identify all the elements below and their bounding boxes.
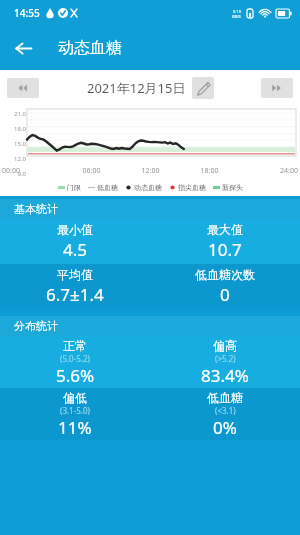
staticText: (>5.2) [215, 353, 236, 364]
staticText: 门限 [67, 183, 81, 192]
staticText: 06:00 [62, 166, 121, 176]
button[interactable]: Previous day [7, 78, 39, 98]
button[interactable]: 偏低 [0, 388, 150, 440]
staticText: 4.5 [63, 238, 88, 261]
staticText: 低血糖 [207, 390, 243, 405]
staticText: 9.0 [1, 170, 26, 178]
staticText: 低血糖次数 [195, 267, 255, 282]
button[interactable]: 最小值 [0, 219, 150, 264]
staticText: 6.7±1.4 [46, 283, 104, 306]
staticText: (5.0-5.2) [60, 353, 90, 364]
staticText: 动态血糖 [58, 38, 122, 58]
staticText: 最大值 [207, 222, 243, 237]
staticText: 基本统计 [14, 202, 58, 216]
staticText: 18.0 [1, 125, 26, 133]
button[interactable]: 低血糖次数 [150, 264, 300, 309]
button[interactable]: 平均值 [0, 264, 150, 309]
button[interactable]: 正常 [0, 336, 150, 388]
staticText: 动态血糖 [134, 183, 162, 192]
staticText: 00:00 [2, 166, 62, 176]
staticText: 12:00 [121, 166, 180, 176]
staticText: 15.0 [1, 140, 26, 148]
staticText: 平均值 [57, 267, 93, 282]
button[interactable]: 偏高 [150, 336, 300, 388]
staticText: 低血糖 [97, 183, 118, 192]
staticText: 21.0 [1, 110, 26, 118]
staticText: 0 [220, 283, 230, 306]
button[interactable]: Edit date [192, 77, 214, 99]
staticText: 正常 [63, 338, 87, 353]
staticText: 14:55 [14, 6, 40, 20]
staticText: (<3.1) [215, 405, 236, 416]
staticText: 新探头 [222, 183, 243, 192]
button[interactable]: Back [6, 31, 40, 65]
staticText: 10.7 [208, 238, 242, 261]
staticText: 指尖血糖 [178, 183, 206, 192]
staticText: 11% [58, 416, 92, 439]
staticText: 0% [213, 416, 237, 439]
staticText: 偏高 [213, 338, 237, 353]
staticText: 2021年12月15日 [87, 79, 186, 97]
staticText: 偏低 [63, 390, 87, 405]
staticText: 0.10 [233, 9, 241, 14]
staticText: 分布统计 [14, 319, 58, 333]
staticText: KB/S [232, 14, 241, 19]
staticText: 12.0 [1, 155, 26, 163]
button[interactable]: Next day [261, 78, 293, 98]
staticText: 83.4% [201, 364, 249, 387]
staticText: 5.6% [56, 364, 95, 387]
button[interactable]: 最大值 [150, 219, 300, 264]
staticText: 24:00 [239, 166, 298, 176]
staticText: 18:00 [180, 166, 239, 176]
staticText: 最小值 [57, 222, 93, 237]
staticText: (3.1-5.0) [60, 405, 90, 416]
button[interactable]: 低血糖 [150, 388, 300, 440]
